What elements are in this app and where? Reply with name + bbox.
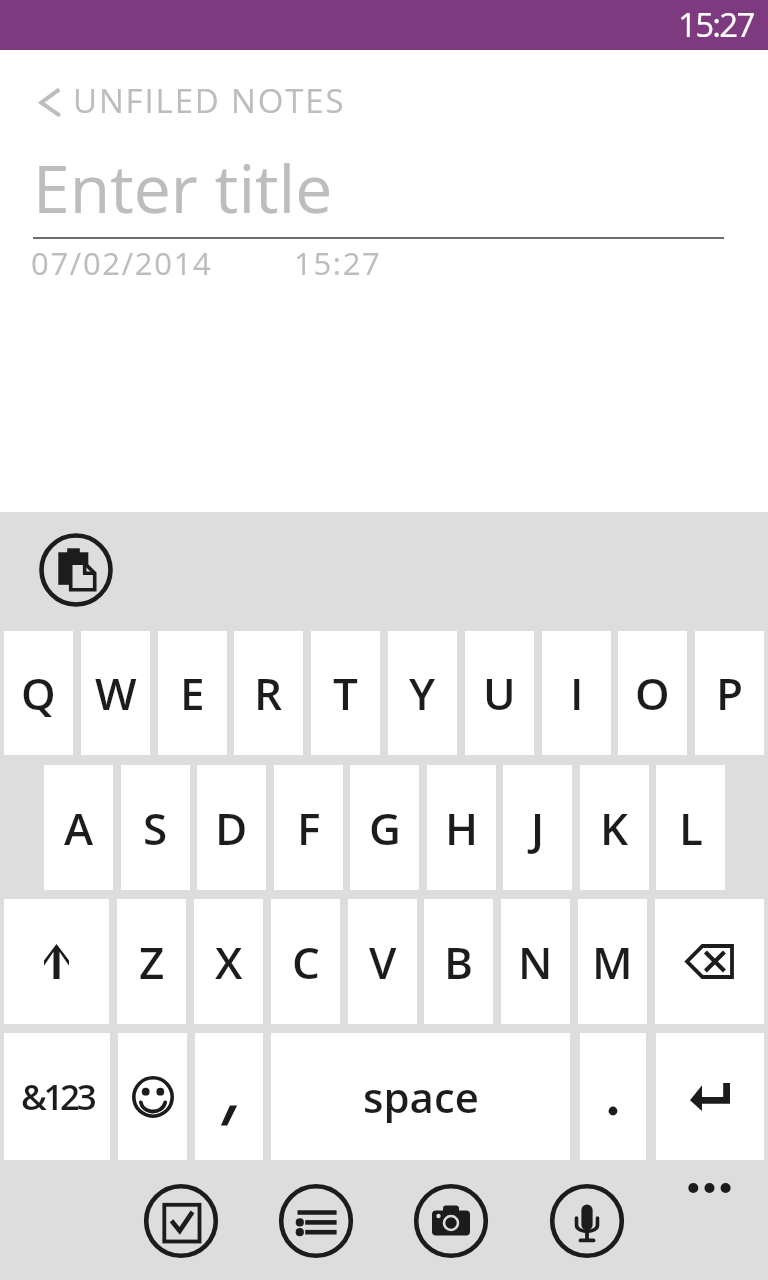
staticText: Z [139, 932, 165, 992]
staticText: M [592, 932, 633, 992]
button[interactable]: H [427, 765, 496, 890]
staticText: 15:27 [678, 2, 754, 47]
staticText: J [531, 798, 545, 858]
staticText: F [297, 798, 321, 858]
staticText: G [369, 798, 401, 858]
staticText: S [143, 798, 168, 858]
staticText: UNFILED NOTES [73, 78, 346, 123]
button[interactable]: Shift [4, 899, 109, 1024]
button[interactable]: Enter [656, 1033, 764, 1160]
staticText: &123 [21, 1073, 94, 1121]
staticText: W [95, 663, 137, 723]
button[interactable]: B [424, 899, 493, 1024]
button[interactable]: W [81, 631, 150, 755]
button[interactable]: K [580, 765, 649, 890]
button[interactable]: UNFILED NOTES [28, 76, 358, 124]
staticText: K [600, 798, 629, 858]
button[interactable]: O [618, 631, 687, 755]
staticText: A [64, 798, 94, 858]
staticText: P [716, 663, 744, 723]
button[interactable]: Voice note [549, 1183, 625, 1259]
staticText: V [369, 932, 397, 992]
staticText: L [679, 798, 703, 858]
staticText: Q [21, 663, 56, 723]
button[interactable]: space [271, 1033, 570, 1160]
button[interactable]: I [542, 631, 611, 755]
button[interactable]: &123 [4, 1033, 110, 1160]
staticText: 15:27 [294, 242, 382, 284]
button[interactable]: Comma [195, 1033, 263, 1160]
button[interactable]: Period [580, 1033, 646, 1160]
staticText: Enter title [33, 142, 333, 232]
staticText: U [483, 663, 516, 723]
button[interactable]: Backspace [655, 899, 764, 1024]
staticText: space [363, 1068, 479, 1125]
button[interactable]: T [311, 631, 380, 755]
button[interactable]: More options [678, 1164, 740, 1212]
button[interactable]: Bulleted list [278, 1183, 354, 1259]
staticText: I [570, 663, 584, 723]
staticText: T [333, 663, 358, 723]
staticText: E [180, 663, 205, 723]
button[interactable]: G [350, 765, 419, 890]
button[interactable]: Camera [413, 1183, 489, 1259]
button[interactable]: E [158, 631, 227, 755]
button[interactable]: Q [4, 631, 73, 755]
button[interactable]: R [234, 631, 303, 755]
staticText: R [254, 663, 283, 723]
button[interactable]: C [271, 899, 340, 1024]
staticText: Y [409, 663, 436, 723]
button[interactable]: Emoji [118, 1033, 187, 1160]
button[interactable]: F [274, 765, 343, 890]
button[interactable]: N [501, 899, 570, 1024]
button[interactable]: J [503, 765, 572, 890]
button[interactable]: A [44, 765, 113, 890]
staticText: B [444, 932, 474, 992]
button[interactable]: S [121, 765, 190, 890]
staticText: O [635, 663, 670, 723]
button[interactable]: L [656, 765, 725, 890]
button[interactable]: X [194, 899, 263, 1024]
button[interactable]: U [465, 631, 534, 755]
button[interactable]: Paste [38, 532, 114, 608]
button[interactable]: V [348, 899, 417, 1024]
button[interactable]: Y [388, 631, 457, 755]
button[interactable]: Z [117, 899, 186, 1024]
staticText: 07/02/2014 [31, 242, 213, 284]
button[interactable]: P [695, 631, 764, 755]
button[interactable]: M [578, 899, 647, 1024]
staticText: D [215, 798, 248, 858]
staticText: C [292, 932, 320, 992]
staticText: H [445, 798, 479, 858]
button[interactable]: New checklist [143, 1183, 219, 1259]
button[interactable]: D [197, 765, 266, 890]
staticText: N [518, 932, 553, 992]
staticText: X [215, 932, 243, 992]
